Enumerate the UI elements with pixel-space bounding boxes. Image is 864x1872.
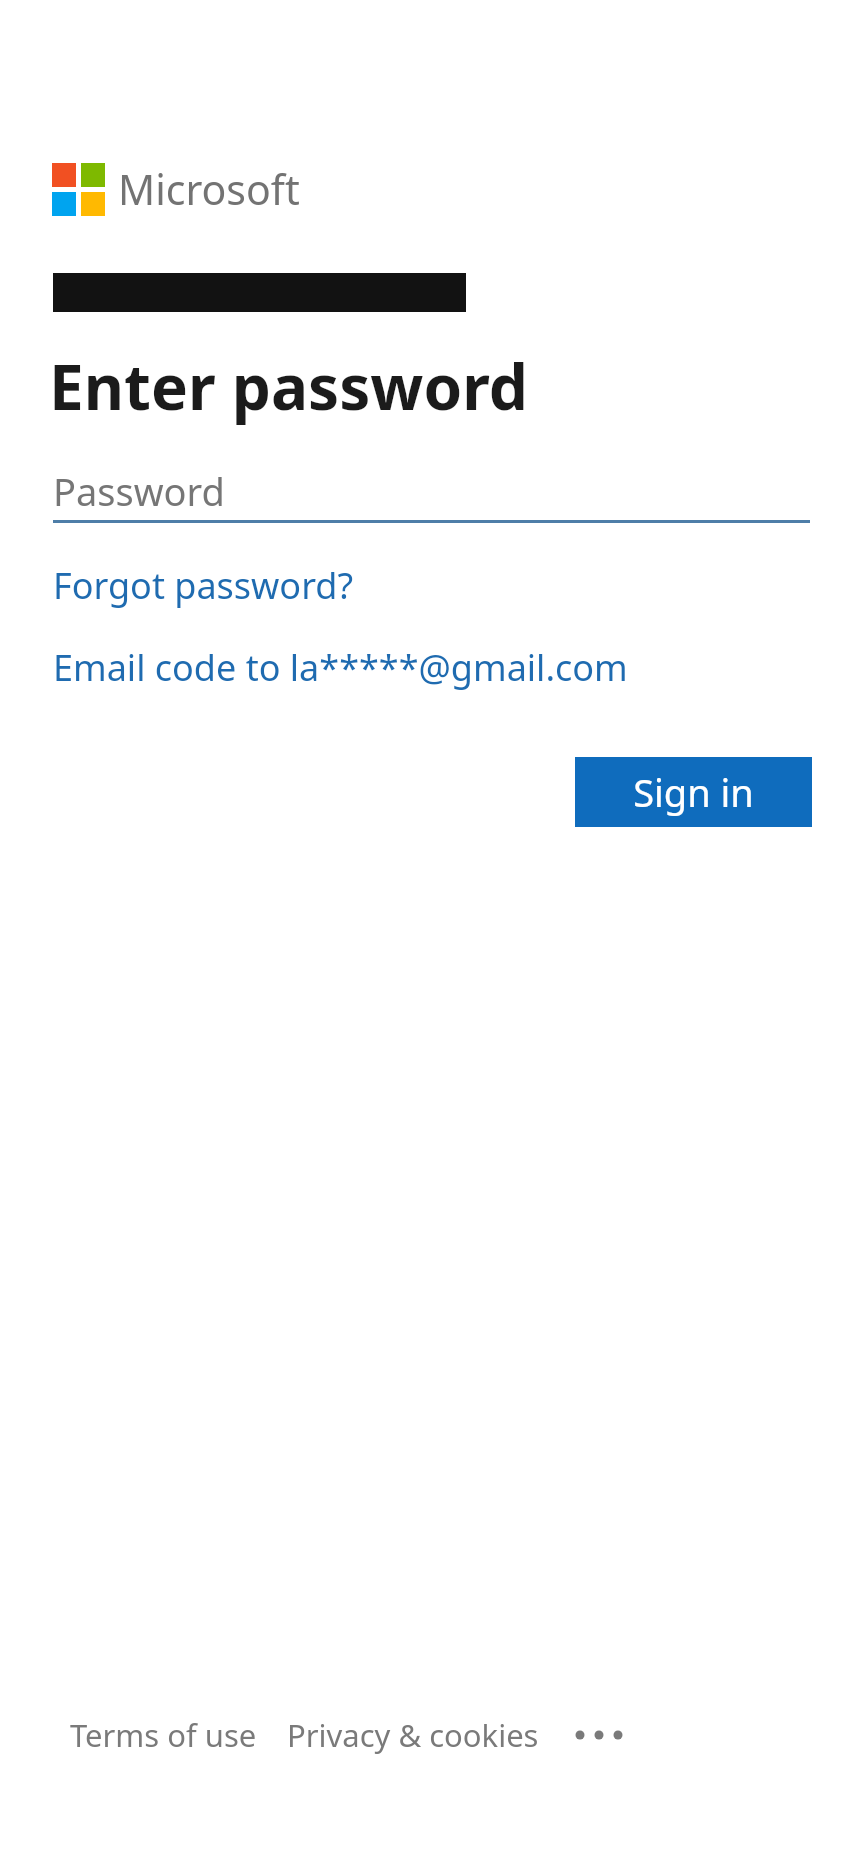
button[interactable]: Password field xyxy=(53,462,810,523)
button[interactable]: Microsoft xyxy=(52,161,300,217)
button[interactable]: Forgot password? xyxy=(53,561,354,610)
button[interactable]: Email code to la*****@gmail.com xyxy=(53,643,628,692)
button[interactable]: Sign in xyxy=(575,757,812,827)
staticText: Forgot password? xyxy=(53,561,354,610)
button[interactable]: Privacy & cookies xyxy=(287,1714,539,1756)
staticText: Microsoft xyxy=(118,161,300,217)
staticText: Privacy & cookies xyxy=(287,1714,539,1756)
staticText: Terms of use xyxy=(70,1714,257,1756)
staticText: Sign in xyxy=(633,766,754,818)
staticText: Email code to la*****@gmail.com xyxy=(53,643,628,692)
button[interactable]: More options xyxy=(569,1713,629,1757)
staticText: Enter password xyxy=(49,344,528,428)
button[interactable]: Terms of use xyxy=(70,1714,257,1756)
staticText: Password xyxy=(53,465,225,517)
